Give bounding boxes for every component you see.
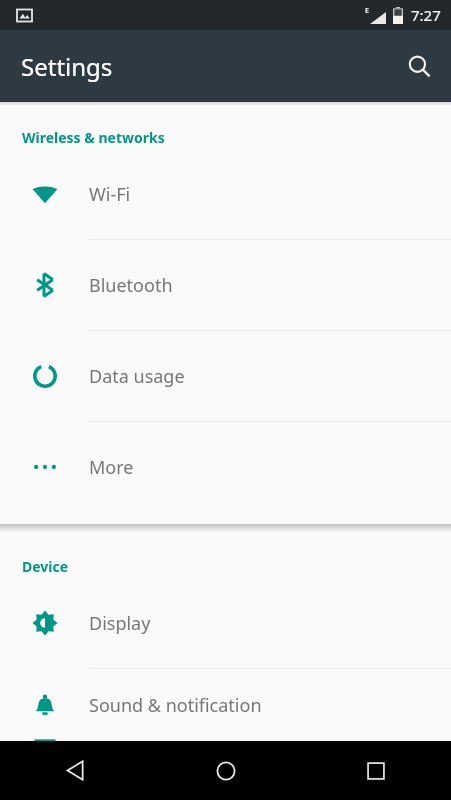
staticText: Bluetooth [89, 273, 173, 298]
button[interactable]: Wi-Fi [0, 149, 451, 240]
button[interactable]: Sound & notification [0, 669, 451, 741]
button[interactable]: Data usage [0, 331, 451, 422]
staticText: Display [89, 611, 151, 636]
staticText: 7:27 [411, 5, 441, 25]
button[interactable]: Search [395, 42, 443, 90]
staticText: Wi-Fi [89, 182, 131, 207]
staticText: Sound & notification [89, 693, 262, 718]
staticText: Data usage [89, 364, 185, 389]
button[interactable]: Bluetooth [0, 240, 451, 331]
staticText: Wireless & networks [22, 128, 165, 147]
staticText: More [89, 455, 134, 480]
staticText: E [365, 6, 369, 16]
button[interactable]: Back [0, 741, 151, 800]
button[interactable]: Recent apps [301, 741, 451, 800]
button[interactable]: Home [151, 741, 301, 800]
button[interactable]: More [0, 422, 451, 512]
button[interactable]: Display [0, 578, 451, 669]
staticText: Device [22, 557, 69, 576]
staticText: Settings [21, 50, 113, 83]
